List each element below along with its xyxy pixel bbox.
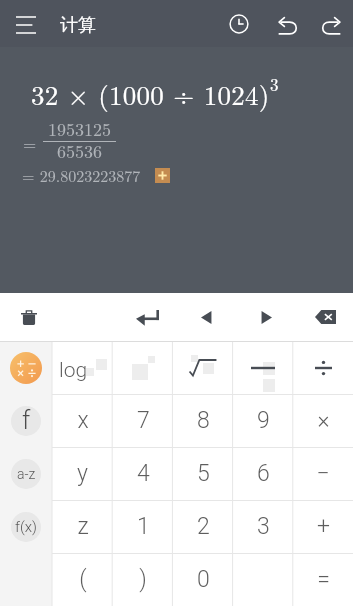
- button[interactable]: Move right: [243, 293, 289, 341]
- staticText: 1: [137, 513, 150, 540]
- button[interactable]: log: [52, 341, 113, 394]
- button[interactable]: Function group: [0, 341, 52, 394]
- button[interactable]: Function group: [0, 447, 52, 500]
- button[interactable]: [293, 341, 353, 394]
- staticText: f: [22, 406, 31, 435]
- button[interactable]: z: [52, 500, 113, 553]
- button[interactable]: =: [293, 553, 353, 606]
- button[interactable]: 9: [233, 394, 293, 447]
- staticText: y: [77, 460, 88, 487]
- button[interactable]: 3: [233, 500, 293, 553]
- button[interactable]: 4: [113, 447, 173, 500]
- staticText: 2: [197, 513, 210, 540]
- button[interactable]: [233, 553, 293, 606]
- button[interactable]: y: [52, 447, 113, 500]
- button[interactable]: Menu: [3, 0, 49, 46]
- button[interactable]: 8: [173, 394, 233, 447]
- staticText: 计算: [60, 14, 96, 37]
- staticText: 4: [137, 460, 150, 487]
- button[interactable]: Move left: [183, 293, 229, 341]
- button[interactable]: [233, 341, 293, 394]
- staticText: 7: [137, 407, 150, 434]
- staticText: =: [23, 131, 37, 155]
- staticText: 5: [197, 460, 210, 487]
- staticText: ): [139, 566, 147, 593]
- staticText: (: [79, 566, 87, 593]
- button[interactable]: ): [113, 553, 173, 606]
- staticText: = 29.8023223877: [22, 164, 141, 187]
- button[interactable]: 2: [173, 500, 233, 553]
- staticText: 6: [257, 460, 270, 487]
- staticText: f(x): [15, 518, 37, 536]
- button[interactable]: Function group: [0, 394, 52, 447]
- staticText: 1953125: [48, 116, 111, 142]
- staticText: 32 × (1000 ÷ 1024): [31, 75, 270, 113]
- staticText: x: [77, 407, 89, 434]
- button[interactable]: Backspace: [302, 293, 348, 341]
- button[interactable]: 0: [173, 553, 233, 606]
- button[interactable]: Enter: [124, 293, 170, 341]
- button[interactable]: [173, 341, 233, 394]
- button[interactable]: x: [52, 394, 113, 447]
- staticText: 8: [197, 407, 210, 434]
- button[interactable]: 6: [233, 447, 293, 500]
- button[interactable]: Function group: [0, 500, 52, 553]
- button[interactable]: Undo: [264, 2, 310, 49]
- button[interactable]: (: [52, 553, 113, 606]
- staticText: z: [77, 513, 89, 540]
- staticText: 3: [257, 513, 270, 540]
- button[interactable]: −: [293, 447, 353, 500]
- staticText: =: [317, 566, 330, 593]
- button[interactable]: 7: [113, 394, 173, 447]
- button[interactable]: [113, 341, 173, 394]
- button[interactable]: History: [216, 0, 262, 47]
- button[interactable]: +: [293, 500, 353, 553]
- button[interactable]: Redo: [309, 2, 353, 49]
- staticText: 3: [270, 72, 279, 96]
- button[interactable]: 1: [113, 500, 173, 553]
- staticText: 65536: [57, 138, 102, 164]
- button[interactable]: Expand: [155, 168, 170, 183]
- staticText: a-z: [17, 466, 36, 482]
- staticText: ×: [317, 407, 330, 434]
- staticText: −: [316, 460, 330, 487]
- staticText: 9: [257, 407, 270, 434]
- staticText: log: [59, 358, 88, 383]
- button[interactable]: Clear: [6, 293, 52, 341]
- button[interactable]: ×: [293, 394, 353, 447]
- button[interactable]: 5: [173, 447, 233, 500]
- staticText: 0: [197, 566, 210, 593]
- staticText: +: [317, 513, 330, 540]
